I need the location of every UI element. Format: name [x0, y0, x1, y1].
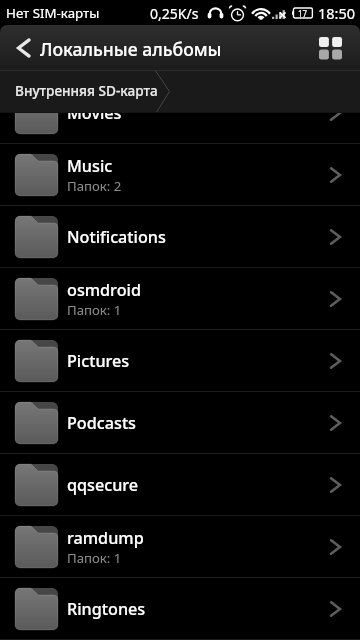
staticText: osmdroid: [67, 279, 141, 301]
staticText: Локальные альбомы: [40, 37, 310, 61]
button[interactable]: Назад: [7, 25, 40, 70]
staticText: Ringtones: [67, 598, 146, 620]
button[interactable]: Podcasts: [0, 392, 360, 453]
staticText: Нет SIM-карты: [6, 4, 100, 22]
staticText: Папок: 2: [67, 177, 122, 195]
button[interactable]: Movies: [0, 113, 360, 143]
button[interactable]: qqsecure: [0, 454, 360, 515]
button[interactable]: Music: [0, 144, 360, 205]
button[interactable]: Pictures: [0, 330, 360, 391]
staticText: Movies: [67, 113, 122, 124]
button[interactable]: Notifications: [0, 206, 360, 267]
staticText: Notifications: [67, 226, 166, 248]
staticText: Внутренняя SD-карта: [15, 81, 158, 100]
staticText: Pictures: [67, 350, 130, 372]
button[interactable]: Ringtones: [0, 578, 360, 639]
staticText: Папок: 1: [67, 301, 122, 319]
button[interactable]: Переключить вид сетки: [310, 25, 351, 70]
button[interactable]: ramdump: [0, 516, 360, 577]
staticText: 18:50: [318, 3, 356, 23]
staticText: Music: [67, 155, 113, 177]
button[interactable]: Внутренняя SD-карта: [0, 70, 168, 113]
staticText: Podcasts: [67, 412, 136, 434]
staticText: 17: [298, 8, 308, 19]
button[interactable]: osmdroid: [0, 268, 360, 329]
staticText: 0,25K/s: [150, 4, 199, 23]
staticText: Папок: 1: [67, 549, 122, 567]
staticText: ramdump: [67, 527, 144, 549]
staticText: qqsecure: [67, 474, 139, 496]
